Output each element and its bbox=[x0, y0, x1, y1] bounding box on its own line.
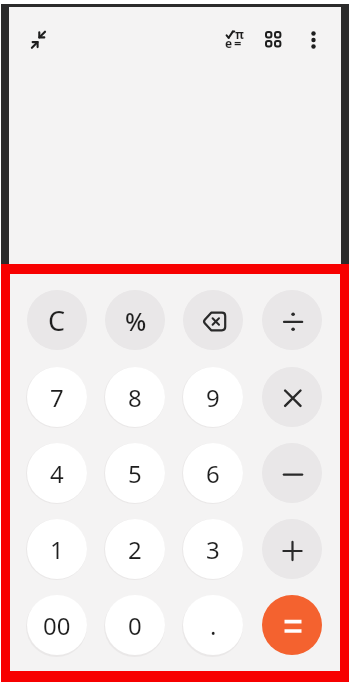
staticText: 6 bbox=[206, 457, 220, 490]
button[interactable]: 6 bbox=[183, 443, 243, 503]
staticText: 0 bbox=[128, 609, 142, 642]
staticText: e bbox=[225, 35, 233, 51]
staticText: 9 bbox=[206, 381, 220, 414]
button[interactable]: . bbox=[183, 595, 243, 655]
button[interactable]: 4 bbox=[27, 443, 87, 503]
button[interactable]: 00 bbox=[27, 595, 87, 655]
button[interactable]: 3 bbox=[183, 519, 243, 579]
staticText: 2 bbox=[128, 533, 142, 566]
button[interactable] bbox=[262, 443, 322, 503]
staticText: 1 bbox=[50, 533, 64, 566]
button[interactable] bbox=[262, 519, 322, 579]
button[interactable] bbox=[302, 28, 326, 52]
staticText: . bbox=[210, 609, 217, 642]
button[interactable]: 8 bbox=[105, 367, 165, 427]
button[interactable]: 0 bbox=[105, 595, 165, 655]
button[interactable] bbox=[262, 28, 286, 52]
button[interactable] bbox=[183, 290, 243, 350]
staticText: 00 bbox=[43, 609, 71, 642]
staticText: 8 bbox=[128, 381, 142, 414]
staticText: C bbox=[48, 302, 66, 339]
button[interactable] bbox=[262, 595, 322, 655]
button[interactable] bbox=[262, 290, 322, 350]
button[interactable]: 1 bbox=[27, 519, 87, 579]
button[interactable] bbox=[26, 28, 50, 52]
button[interactable]: 2 bbox=[105, 519, 165, 579]
button[interactable]: 9 bbox=[183, 367, 243, 427]
button[interactable]: π bbox=[223, 27, 247, 51]
staticText: 7 bbox=[50, 381, 64, 414]
staticText: 5 bbox=[128, 457, 142, 490]
staticText: = bbox=[234, 34, 242, 52]
staticText: π bbox=[235, 26, 244, 42]
button[interactable]: % bbox=[105, 290, 165, 350]
button[interactable]: 5 bbox=[105, 443, 165, 503]
staticText: 4 bbox=[50, 457, 64, 490]
button[interactable]: C bbox=[27, 290, 87, 350]
staticText: 3 bbox=[206, 533, 220, 566]
button[interactable] bbox=[262, 367, 322, 427]
staticText: % bbox=[125, 304, 147, 338]
button[interactable]: 7 bbox=[27, 367, 87, 427]
